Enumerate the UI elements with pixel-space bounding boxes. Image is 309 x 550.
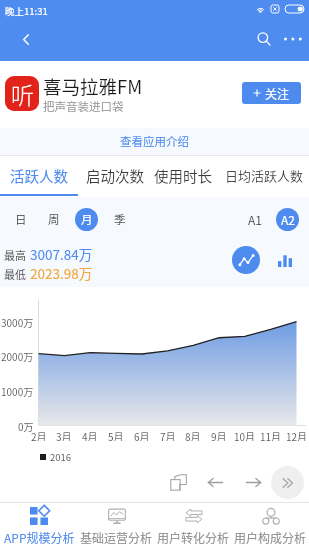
staticText: 听 [11,77,34,110]
staticText: 1000万 [1,384,34,398]
staticText: 6月 [134,429,150,443]
button[interactable]: 日 [9,208,32,231]
staticText: 周 [48,211,60,228]
button[interactable]: 季 [108,208,131,231]
staticText: 启动次数 [86,165,144,186]
button[interactable]: Copy [163,467,193,497]
button[interactable]: 月 [75,208,98,231]
staticText: 3000万 [1,315,34,329]
staticText: A2 [281,211,295,228]
staticText: 用户转化分析 [157,529,230,546]
button[interactable]: 活跃人数 [1,156,77,197]
button[interactable]: Back [6,22,46,56]
staticText: 基础运营分析 [80,529,153,546]
button[interactable]: Expand [271,466,304,499]
staticText: 关注 [265,85,290,102]
staticText: A1 [248,211,262,228]
staticText: 月 [81,211,93,228]
button[interactable]: A1 [243,208,266,231]
button[interactable]: Previous [200,467,230,497]
staticText: 晚上11:31 [5,4,48,18]
button[interactable]: 查看应用介绍 [110,129,199,154]
staticText: 日 [15,211,27,228]
button[interactable]: Bar chart [271,246,299,274]
button[interactable]: APP规模分析 [0,503,78,550]
button[interactable]: 周 [42,208,65,231]
staticText: 使用时长 [154,165,212,186]
staticText: 活跃人数 [10,165,68,186]
staticText: 2月 [31,429,47,443]
button[interactable]: 关注 [242,82,301,104]
staticText: 10月 [234,429,256,443]
button[interactable]: 日均活跃人数 [222,156,306,197]
button[interactable]: 基础运营分析 [78,503,155,550]
button[interactable]: A2 [276,208,299,231]
staticText: 5月 [108,429,124,443]
button[interactable]: More options [277,23,309,55]
staticText: 查看应用介绍 [120,133,189,150]
staticText: 最低 [4,266,26,282]
staticText: 12月 [286,429,308,443]
staticText: 7月 [160,429,176,443]
staticText: 用户构成分析 [234,529,307,546]
button[interactable]: 用户构成分析 [232,503,309,550]
staticText: 喜马拉雅FM [43,73,143,100]
staticText: APP规模分析 [4,529,75,546]
staticText: 2000万 [1,349,34,363]
staticText: 2023.98万 [30,263,93,283]
staticText: 3月 [56,429,72,443]
staticText: 日均活跃人数 [225,166,304,185]
staticText: 0万 [18,419,34,433]
staticText: 8月 [185,429,201,443]
staticText: 11月 [260,429,282,443]
staticText: 9月 [211,429,227,443]
button[interactable]: Search [248,23,280,55]
button[interactable]: 启动次数 [77,156,153,197]
staticText: 2016 [50,450,72,464]
button[interactable]: Line chart [232,246,260,274]
button[interactable]: Next [238,467,268,497]
button[interactable]: 用户转化分析 [155,503,232,550]
staticText: 3007.84万 [30,244,93,264]
button[interactable]: 使用时长 [145,156,221,197]
staticText: 季 [114,211,126,228]
staticText: 4月 [82,429,98,443]
staticText: 把声音装进口袋 [43,98,124,115]
staticText: 最高 [4,247,26,263]
